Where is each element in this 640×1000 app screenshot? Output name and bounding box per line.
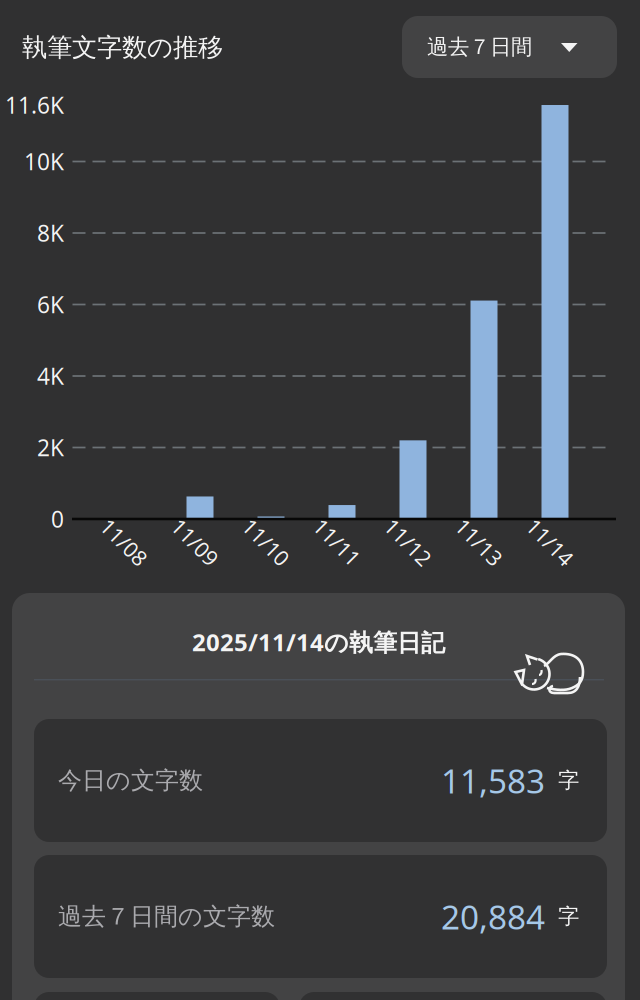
staticText: 過去７日間 [427,34,532,60]
button[interactable]: 過去７日間 [402,16,617,78]
staticText: 4K [37,361,64,391]
staticText: 11/14 [522,528,578,556]
staticText: 11.6K [5,90,64,120]
staticText: 6K [37,289,64,319]
staticText: 今日の文字数 [58,766,203,795]
staticText: 11,583 [441,758,545,803]
button[interactable]: 今日の文字数 [34,719,607,842]
staticText: 11/09 [167,528,223,556]
staticText: 20,884 [441,894,545,939]
staticText: 0 [51,504,64,534]
staticText: 11/12 [380,528,436,556]
staticText: 字 [558,903,579,930]
staticText: 執筆文字数の推移 [22,32,223,63]
staticText: 2K [37,432,64,462]
staticText: 10K [24,146,64,176]
staticText: 字 [558,767,579,794]
staticText: 過去７日間の文字数 [58,902,275,931]
button[interactable]: 過去７日間の文字数 [34,855,607,978]
staticText: 11/11 [309,528,365,556]
staticText: 11/10 [238,528,294,556]
staticText: 8K [37,218,64,248]
staticText: 11/13 [451,528,507,556]
staticText: 2025/11/14の執筆日記 [192,626,445,658]
staticText: 11/08 [96,528,152,556]
